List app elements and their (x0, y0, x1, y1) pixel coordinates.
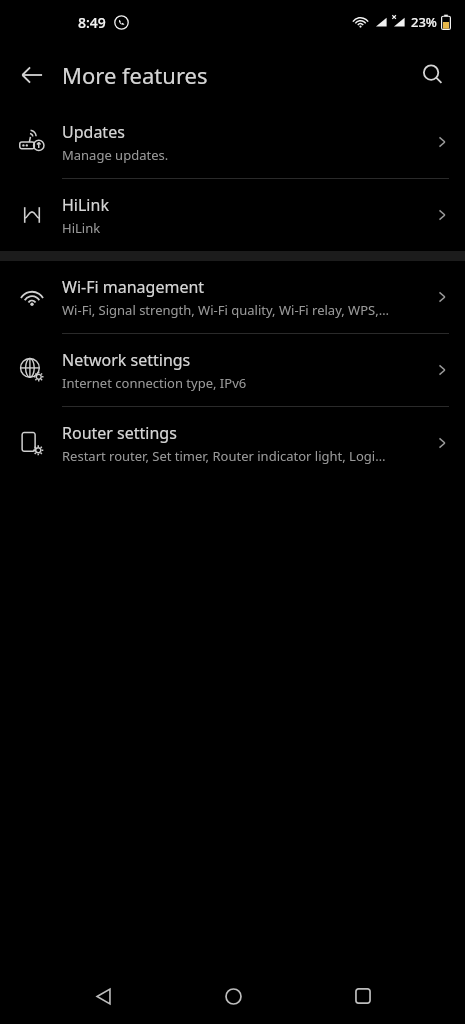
button[interactable]: Recents (335, 968, 391, 1024)
staticText: Wi-Fi, Signal strength, Wi-Fi quality, W… (62, 301, 389, 319)
staticText: 8:49 (78, 13, 106, 32)
button[interactable]: Router settings (0, 407, 465, 479)
staticText: Internet connection type, IPv6 (62, 374, 247, 392)
button[interactable]: Search (409, 51, 457, 99)
button[interactable]: Wi-Fi management (0, 261, 465, 333)
button[interactable]: Updates (0, 106, 465, 178)
button[interactable]: HiLink (0, 179, 465, 251)
button[interactable]: Network settings (0, 334, 465, 406)
staticText: More features (62, 60, 208, 90)
staticText: HiLink (62, 194, 109, 216)
staticText: HiLink (62, 219, 101, 237)
staticText: Updates (62, 121, 125, 143)
staticText: 23% (411, 13, 437, 31)
staticText: Restart router, Set timer, Router indica… (62, 447, 386, 465)
staticText: Router settings (62, 422, 177, 444)
staticText: Network settings (62, 349, 191, 371)
staticText: Manage updates. (62, 146, 169, 164)
staticText: Wi-Fi management (62, 276, 205, 298)
button[interactable]: Home (205, 968, 261, 1024)
button[interactable]: Back (75, 968, 131, 1024)
button[interactable]: Back (8, 51, 56, 99)
